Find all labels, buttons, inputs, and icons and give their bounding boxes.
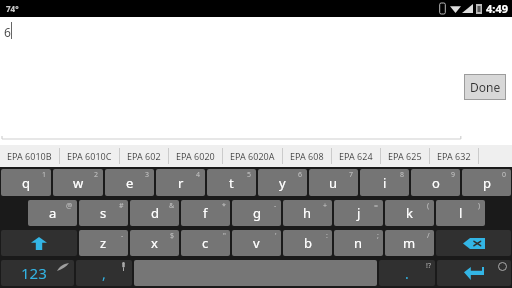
staticText: p bbox=[483, 174, 491, 192]
staticText: d bbox=[151, 204, 159, 222]
button[interactable]: w bbox=[53, 169, 103, 196]
button[interactable]: i bbox=[360, 169, 409, 196]
staticText: EPA 624 bbox=[339, 150, 373, 162]
button[interactable]: o bbox=[411, 169, 460, 196]
button[interactable]: l bbox=[436, 200, 485, 226]
staticText: - bbox=[274, 201, 277, 211]
staticText: 6 bbox=[4, 24, 11, 40]
staticText: 7 bbox=[349, 170, 354, 180]
staticText: m bbox=[403, 234, 416, 252]
staticText: " bbox=[223, 231, 226, 241]
button[interactable]: EPA 625 bbox=[381, 145, 429, 167]
staticText: 5 bbox=[247, 170, 252, 180]
staticText: i bbox=[383, 174, 387, 192]
button[interactable]: EPA 624 bbox=[332, 145, 380, 167]
button[interactable]: EPA 608 bbox=[283, 145, 331, 167]
staticText: EPA 608 bbox=[290, 150, 324, 162]
button[interactable]: s bbox=[79, 200, 128, 226]
staticText: = bbox=[374, 201, 379, 211]
staticText: y bbox=[279, 174, 286, 192]
staticText: k bbox=[406, 204, 413, 222]
staticText: / bbox=[427, 231, 430, 241]
staticText: EPA 632 bbox=[437, 150, 471, 162]
staticText: EPA 602 bbox=[127, 150, 161, 162]
button[interactable]: q bbox=[1, 169, 51, 196]
staticText: EPA 6010B bbox=[7, 150, 52, 162]
staticText: $ bbox=[170, 231, 175, 241]
staticText: r bbox=[178, 174, 184, 192]
staticText: v bbox=[253, 234, 260, 252]
staticText: ) bbox=[478, 201, 481, 211]
staticText: b bbox=[304, 234, 312, 252]
button[interactable]: , bbox=[76, 260, 132, 286]
staticText: x bbox=[151, 234, 158, 252]
staticText: 1 bbox=[42, 170, 47, 180]
staticText: ( bbox=[427, 201, 430, 211]
button[interactable]: g bbox=[232, 200, 281, 226]
button[interactable]: z bbox=[79, 230, 128, 256]
staticText: - bbox=[121, 231, 124, 241]
staticText: EPA 6020 bbox=[176, 150, 215, 162]
button[interactable]: a bbox=[28, 200, 77, 226]
button[interactable]: EPA 6020 bbox=[169, 145, 222, 167]
button[interactable]: n bbox=[334, 230, 383, 256]
button[interactable]: 123 bbox=[1, 260, 74, 286]
staticText: 4:49 bbox=[486, 1, 508, 16]
button[interactable]: v bbox=[232, 230, 281, 256]
button[interactable]: Delete bbox=[436, 230, 511, 256]
staticText: 9 bbox=[451, 170, 456, 180]
staticText: z bbox=[100, 234, 107, 252]
staticText: EPA 6010C bbox=[67, 150, 112, 162]
button[interactable]: r bbox=[156, 169, 205, 196]
staticText: e bbox=[126, 174, 134, 192]
button[interactable]: EPA 602 bbox=[120, 145, 168, 167]
staticText: . bbox=[405, 264, 409, 283]
button[interactable]: m bbox=[385, 230, 434, 256]
staticText: c bbox=[202, 234, 209, 252]
button[interactable]: EPA 6010C bbox=[60, 145, 119, 167]
button[interactable]: d bbox=[130, 200, 179, 226]
button[interactable]: t bbox=[207, 169, 256, 196]
button[interactable]: b bbox=[283, 230, 332, 256]
staticText: + bbox=[323, 201, 328, 211]
staticText: 6 bbox=[298, 170, 303, 180]
staticText: !? bbox=[426, 261, 431, 271]
staticText: ; bbox=[377, 231, 379, 241]
staticText: , bbox=[102, 264, 106, 283]
button[interactable]: Shift bbox=[1, 230, 77, 256]
button[interactable]: h bbox=[283, 200, 332, 226]
staticText: # bbox=[119, 201, 124, 211]
staticText: * bbox=[222, 201, 226, 211]
button[interactable]: EPA 6020A bbox=[223, 145, 282, 167]
button[interactable]: k bbox=[385, 200, 434, 226]
staticText: 8 bbox=[400, 170, 405, 180]
staticText: 74° bbox=[6, 3, 19, 14]
staticText: : bbox=[326, 231, 328, 241]
button[interactable]: Done bbox=[465, 75, 505, 99]
button[interactable]: x bbox=[130, 230, 179, 256]
staticText: a bbox=[49, 204, 57, 222]
button[interactable]: f bbox=[181, 200, 230, 226]
button[interactable]: u bbox=[309, 169, 358, 196]
staticText: o bbox=[432, 174, 440, 192]
staticText: s bbox=[100, 204, 107, 222]
button[interactable]: . bbox=[379, 260, 435, 286]
staticText: EPA 6020A bbox=[230, 150, 275, 162]
staticText: q bbox=[22, 174, 30, 192]
button[interactable]: EPA 632 bbox=[430, 145, 478, 167]
staticText: @ bbox=[66, 201, 73, 211]
staticText: u bbox=[329, 174, 338, 192]
button[interactable]: y bbox=[258, 169, 307, 196]
button[interactable]: e bbox=[105, 169, 154, 196]
staticText: h bbox=[303, 204, 312, 222]
button[interactable]: p bbox=[462, 169, 511, 196]
button[interactable]: EPA 6010B bbox=[0, 145, 59, 167]
staticText: t bbox=[229, 174, 234, 192]
button[interactable]: j bbox=[334, 200, 383, 226]
staticText: Done bbox=[470, 79, 501, 95]
staticText: f bbox=[203, 204, 208, 222]
staticText: 123 bbox=[21, 263, 47, 283]
button[interactable]: c bbox=[181, 230, 230, 256]
button[interactable]: Enter bbox=[437, 260, 511, 286]
